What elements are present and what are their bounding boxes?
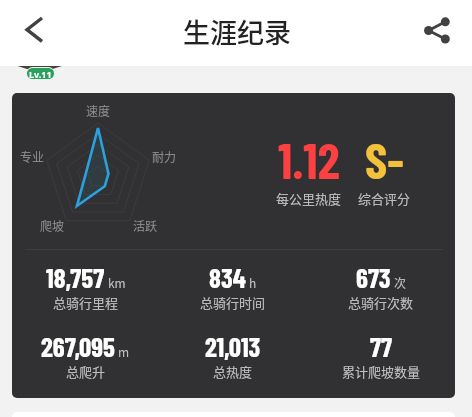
staticText: 耐力 [152,148,177,165]
button[interactable]: 21,013 [159,330,307,381]
staticText: h [249,274,257,291]
staticText: 活跃 [133,217,158,234]
button[interactable]: 18,757 [12,261,159,312]
staticText: 速度 [86,102,111,119]
staticText: 累计爬坡数量 [342,362,421,381]
staticText: 总热度 [213,362,253,381]
staticText: 总骑行里程 [53,293,119,312]
staticText: 每公里热度 [276,189,342,208]
staticText: 1.12 [278,129,340,189]
staticText: 77 [370,330,392,362]
button[interactable]: Share [414,7,460,53]
staticText: 次 [394,274,407,291]
button[interactable]: 267,095 [12,330,159,381]
staticText: 673 [356,261,391,293]
staticText: 专业 [20,148,45,165]
staticText: m [118,343,130,360]
staticText: 爬坡 [40,217,65,234]
staticText: km [108,274,126,291]
staticText: 834 [209,261,246,293]
staticText: 综合评分 [358,189,411,208]
staticText: 21,013 [205,330,261,362]
staticText: 总骑行时间 [200,293,266,312]
button[interactable]: 673 [307,261,455,312]
other: Level 11 [27,68,54,79]
button[interactable]: 1.12 [249,129,369,208]
staticText: 18,757 [46,261,105,293]
staticText: Lv.11 [29,68,52,79]
button[interactable]: 77 [307,330,455,381]
button[interactable]: S- [324,129,444,208]
button[interactable]: Back [11,8,57,54]
button[interactable]: 834 [159,261,307,312]
staticText: 267,095 [41,330,115,362]
staticText: 总爬升 [66,362,106,381]
staticText: 总骑行次数 [348,293,414,312]
staticText: 生涯纪录 [183,12,291,51]
staticText: S- [365,129,404,189]
